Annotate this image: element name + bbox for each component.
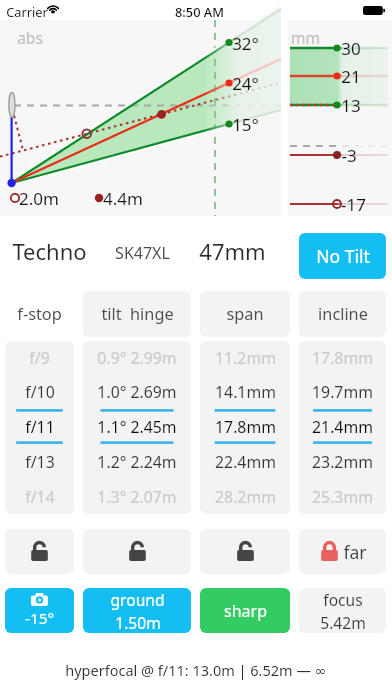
- staticText: tilt hinge: [101, 303, 174, 325]
- button[interactable]: sharp: [200, 588, 290, 633]
- button[interactable]: 14.1mm: [200, 375, 290, 409]
- staticText: mm: [291, 27, 320, 48]
- button[interactable]: 1.2° 2.24m: [83, 444, 191, 479]
- staticText: 4.4m: [103, 187, 143, 210]
- button[interactable]: 0.9° 2.99m: [83, 341, 191, 375]
- button[interactable]: f/9: [5, 341, 74, 375]
- button[interactable]: 1.0° 2.69m: [83, 375, 191, 409]
- staticText: 14.1mm: [215, 381, 276, 403]
- button[interactable]: incline: [299, 291, 386, 337]
- staticText: 17.8mm: [312, 347, 373, 369]
- button[interactable]: 11.2mm: [200, 341, 290, 375]
- button[interactable]: f-stop: [5, 291, 74, 337]
- staticText: 8:50 AM: [175, 3, 224, 20]
- staticText: focus: [323, 589, 363, 610]
- button[interactable]: tilt hinge: [83, 291, 191, 337]
- staticText: 1.1° 2.45m: [97, 416, 177, 438]
- staticText: 30: [341, 37, 361, 60]
- button[interactable]: 47mm: [199, 236, 266, 266]
- button[interactable]: focus: [299, 588, 386, 633]
- staticText: SK47XL: [115, 242, 170, 264]
- button[interactable]: -15°: [5, 588, 74, 633]
- staticText: 25.3mm: [312, 486, 373, 508]
- staticText: far: [343, 540, 367, 564]
- staticText: f/13: [25, 451, 55, 473]
- staticText: -17: [341, 193, 366, 216]
- button[interactable]: 1.3° 2.07m: [83, 479, 191, 514]
- button[interactable]: 1.1° 2.45m: [83, 409, 191, 444]
- button[interactable]: Techno: [12, 236, 87, 266]
- staticText: ground: [110, 589, 165, 610]
- staticText: No Tilt: [316, 244, 370, 268]
- button[interactable]: 23.2mm: [299, 444, 386, 479]
- staticText: -3: [341, 144, 357, 167]
- button[interactable]: f/14: [5, 479, 74, 514]
- staticText: 19.7mm: [312, 381, 373, 403]
- staticText: hyperfocal @ f/11: 13.0m | 6.52m — ∞: [65, 660, 327, 680]
- staticText: incline: [318, 303, 368, 325]
- staticText: f/14: [25, 486, 55, 508]
- button[interactable]: f/11: [5, 409, 74, 444]
- button[interactable]: unlock: [5, 529, 74, 574]
- button[interactable]: 17.8mm: [200, 409, 290, 444]
- button[interactable]: far lock: [299, 529, 386, 574]
- button[interactable]: SK47XL: [115, 242, 170, 264]
- staticText: 1.0° 2.69m: [97, 381, 177, 403]
- staticText: span: [226, 303, 264, 325]
- button[interactable]: f/10: [5, 375, 74, 409]
- staticText: f/10: [25, 381, 55, 403]
- staticText: 17.8mm: [215, 416, 276, 438]
- staticText: 24°: [232, 72, 259, 95]
- staticText: 5.42m: [320, 612, 366, 633]
- button[interactable]: ground: [83, 588, 191, 633]
- button[interactable]: span: [200, 291, 290, 337]
- staticText: f/9: [29, 347, 50, 369]
- staticText: 21.4mm: [312, 416, 373, 438]
- button[interactable]: 25.3mm: [299, 479, 386, 514]
- button[interactable]: 19.7mm: [299, 375, 386, 409]
- button[interactable]: No Tilt: [299, 233, 386, 279]
- staticText: 13: [341, 94, 361, 117]
- staticText: 15°: [232, 113, 259, 136]
- staticText: 23.2mm: [312, 451, 373, 473]
- staticText: Carrier: [6, 3, 48, 20]
- button[interactable]: 22.4mm: [200, 444, 290, 479]
- staticText: Techno: [12, 236, 87, 266]
- staticText: 22.4mm: [215, 451, 276, 473]
- staticText: 1.3° 2.07m: [97, 486, 177, 508]
- staticText: 1.50m: [115, 612, 161, 633]
- staticText: f/11: [25, 416, 55, 438]
- button[interactable]: 21.4mm: [299, 409, 386, 444]
- staticText: 2.0m: [19, 187, 59, 210]
- staticText: 32°: [232, 32, 259, 55]
- staticText: sharp: [224, 600, 267, 622]
- staticText: 1.2° 2.24m: [97, 451, 177, 473]
- button[interactable]: 28.2mm: [200, 479, 290, 514]
- staticText: -15°: [25, 608, 54, 629]
- staticText: abs: [17, 27, 43, 48]
- button[interactable]: f/13: [5, 444, 74, 479]
- staticText: 21: [341, 65, 361, 88]
- button[interactable]: unlock: [200, 529, 290, 574]
- staticText: 28.2mm: [215, 486, 276, 508]
- staticText: 11.2mm: [215, 347, 276, 369]
- button[interactable]: unlock: [83, 529, 191, 574]
- button[interactable]: 17.8mm: [299, 341, 386, 375]
- staticText: 0.9° 2.99m: [97, 347, 177, 369]
- staticText: f-stop: [17, 303, 62, 325]
- staticText: 47mm: [199, 236, 266, 266]
